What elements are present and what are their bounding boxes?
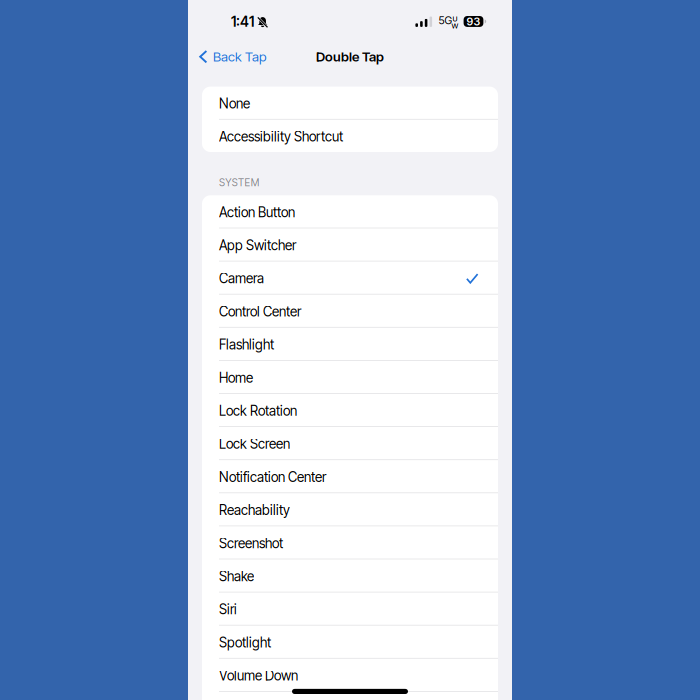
button[interactable]: None: [202, 87, 498, 119]
staticText: Spotlight: [219, 634, 271, 651]
button[interactable]: Flashlight: [202, 328, 498, 360]
button[interactable]: Accessibility Shortcut: [202, 120, 498, 152]
staticText: Shake: [219, 568, 254, 584]
staticText: SYSTEM: [219, 176, 260, 189]
staticText: Action Button: [219, 204, 295, 220]
button[interactable]: Notification Center: [202, 460, 498, 492]
staticText: Control Center: [219, 303, 301, 320]
button[interactable]: Volume Down: [202, 659, 498, 691]
button[interactable]: Lock Rotation: [202, 394, 498, 426]
button[interactable]: Back Tap: [188, 42, 274, 72]
staticText: App Switcher: [219, 237, 296, 253]
staticText: Lock Rotation: [219, 403, 297, 419]
staticText: Volume Down: [219, 667, 298, 684]
staticText: W: [451, 22, 458, 30]
button[interactable]: Control Center: [202, 295, 498, 327]
staticText: U: [452, 14, 457, 23]
button[interactable]: Home: [202, 361, 498, 393]
button[interactable]: Spotlight: [202, 626, 498, 658]
staticText: Siri: [219, 601, 237, 618]
staticText: 5G: [438, 14, 452, 27]
staticText: Double Tap: [316, 49, 384, 65]
button[interactable]: Volume Up: [202, 692, 498, 700]
button[interactable]: Shake: [202, 559, 498, 592]
staticText: Reachability: [219, 502, 290, 518]
button[interactable]: Siri: [202, 592, 498, 625]
staticText: Screenshot: [219, 535, 283, 551]
button[interactable]: Screenshot: [202, 526, 498, 559]
staticText: Back Tap: [213, 49, 266, 65]
button[interactable]: App Switcher: [202, 228, 498, 261]
staticText: Notification Center: [219, 469, 326, 485]
staticText: Home: [219, 370, 253, 386]
staticText: Lock Screen: [219, 436, 290, 452]
staticText: 93: [466, 15, 480, 28]
staticText: Accessibility Shortcut: [219, 128, 343, 145]
button[interactable]: Lock Screen: [202, 427, 498, 459]
staticText: Flashlight: [219, 336, 274, 353]
staticText: 1:41: [231, 13, 254, 30]
button[interactable]: Reachability: [202, 493, 498, 525]
staticText: Camera: [219, 270, 264, 287]
button[interactable]: Camera: [202, 261, 498, 294]
staticText: None: [219, 95, 250, 112]
button[interactable]: Action Button: [202, 195, 498, 228]
